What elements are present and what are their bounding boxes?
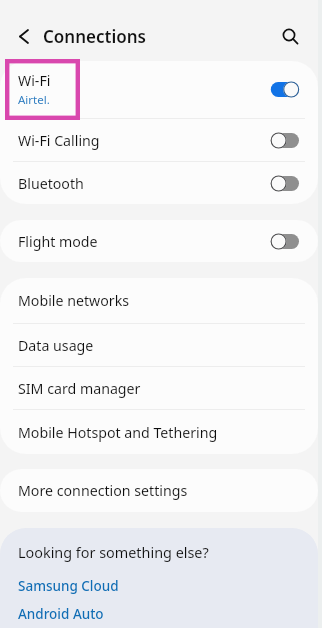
button[interactable]: Data usage xyxy=(0,324,318,366)
staticText: Mobile Hotspot and Tethering xyxy=(18,423,218,442)
button[interactable]: Wi-Fi xyxy=(0,61,318,118)
staticText: Flight mode xyxy=(18,232,98,251)
staticText: Bluetooth xyxy=(18,174,84,193)
button[interactable]: Android Auto xyxy=(18,605,104,623)
button[interactable]: Wi-Fi Calling xyxy=(0,119,318,161)
staticText: Airtel. xyxy=(18,92,50,108)
staticText: Wi-Fi Calling xyxy=(18,131,100,150)
button[interactable]: Mobile networks xyxy=(0,278,318,323)
staticText: Mobile networks xyxy=(18,291,130,310)
staticText: SIM card manager xyxy=(18,379,141,398)
button[interactable]: Flight mode xyxy=(0,220,318,262)
staticText: Looking for something else? xyxy=(18,543,209,563)
button[interactable]: Mobile Hotspot and Tethering xyxy=(0,410,318,454)
button[interactable]: SIM card manager xyxy=(0,367,318,409)
button[interactable]: Back xyxy=(2,14,46,58)
staticText: Connections xyxy=(43,25,146,48)
button[interactable]: Search xyxy=(269,15,313,59)
button[interactable]: Samsung Cloud xyxy=(18,577,119,595)
staticText: Data usage xyxy=(18,336,94,355)
staticText: More connection settings xyxy=(18,481,188,500)
button[interactable]: More connection settings xyxy=(0,469,318,512)
staticText: Wi-Fi xyxy=(18,71,51,90)
button[interactable]: Bluetooth xyxy=(0,162,318,204)
